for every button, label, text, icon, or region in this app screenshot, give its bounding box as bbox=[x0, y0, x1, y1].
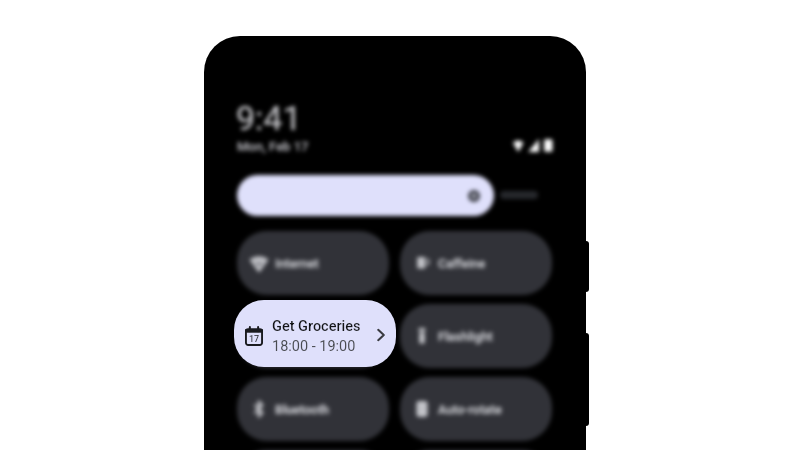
staticText: Bluetooth bbox=[275, 402, 330, 417]
staticText: Get Groceries bbox=[272, 318, 361, 335]
button[interactable]: Flashlight bbox=[400, 304, 552, 368]
staticText: Calendar bbox=[275, 329, 325, 344]
staticText: Flashlight bbox=[438, 329, 493, 344]
button[interactable]: Internet bbox=[237, 231, 389, 295]
button[interactable]: Calendar bbox=[237, 304, 389, 368]
button[interactable]: Bluetooth bbox=[237, 377, 389, 441]
button[interactable]: Caffeine bbox=[400, 231, 552, 295]
staticText: 9:41 bbox=[236, 98, 302, 138]
staticText: Auto-rotate bbox=[438, 402, 502, 417]
button[interactable]: Auto-rotate bbox=[400, 377, 552, 441]
staticText: 17 bbox=[249, 334, 260, 345]
staticText: Caffeine bbox=[438, 256, 486, 271]
staticText: 18:00 - 19:00 bbox=[272, 338, 356, 355]
staticText: Mon, Feb 17 bbox=[237, 139, 309, 154]
button[interactable]: 17 bbox=[234, 300, 396, 367]
staticText: Internet bbox=[275, 256, 319, 271]
button[interactable]: Brightness bbox=[237, 175, 494, 216]
